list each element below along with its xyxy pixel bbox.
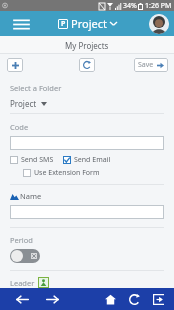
button[interactable]: Home xyxy=(100,289,120,309)
button[interactable]: P xyxy=(58,16,117,31)
button[interactable]: Save xyxy=(134,58,168,72)
staticText: Project xyxy=(10,98,37,109)
staticText: Send Email xyxy=(74,155,111,165)
button[interactable]: Open navigation menu xyxy=(10,13,32,35)
staticText: My Projects xyxy=(65,40,109,51)
button[interactable]: Reload xyxy=(124,289,144,309)
staticText: Select a Folder xyxy=(10,83,62,93)
staticText: Name xyxy=(20,191,42,201)
button[interactable]: Period toggle xyxy=(10,249,40,263)
button[interactable]: Project xyxy=(10,98,164,109)
staticText: 34% xyxy=(123,1,137,11)
staticText: 1:26 PM xyxy=(145,1,172,11)
button[interactable]: Refresh xyxy=(79,58,95,72)
staticText: Send SMS xyxy=(21,155,54,165)
button[interactable] xyxy=(10,205,164,219)
button[interactable]: Back xyxy=(10,288,34,310)
button[interactable]: Sign out xyxy=(148,289,168,309)
staticText: Project xyxy=(71,16,107,31)
staticText: Leader xyxy=(10,278,35,288)
button[interactable]: Use Extension Form xyxy=(23,168,100,178)
staticText: Code xyxy=(10,122,29,132)
button[interactable]: Account xyxy=(149,14,169,34)
button[interactable]: Forward xyxy=(40,288,64,310)
button[interactable] xyxy=(10,136,164,150)
button[interactable]: Pick leader xyxy=(38,277,49,288)
button[interactable]: Add xyxy=(7,58,23,72)
button[interactable]: Send Email xyxy=(63,155,111,165)
button[interactable]: Send SMS xyxy=(10,155,54,165)
staticText: P xyxy=(61,19,66,29)
staticText: Use Extension Form xyxy=(34,168,100,178)
staticText: Period xyxy=(10,235,33,245)
staticText: Save xyxy=(138,60,154,70)
